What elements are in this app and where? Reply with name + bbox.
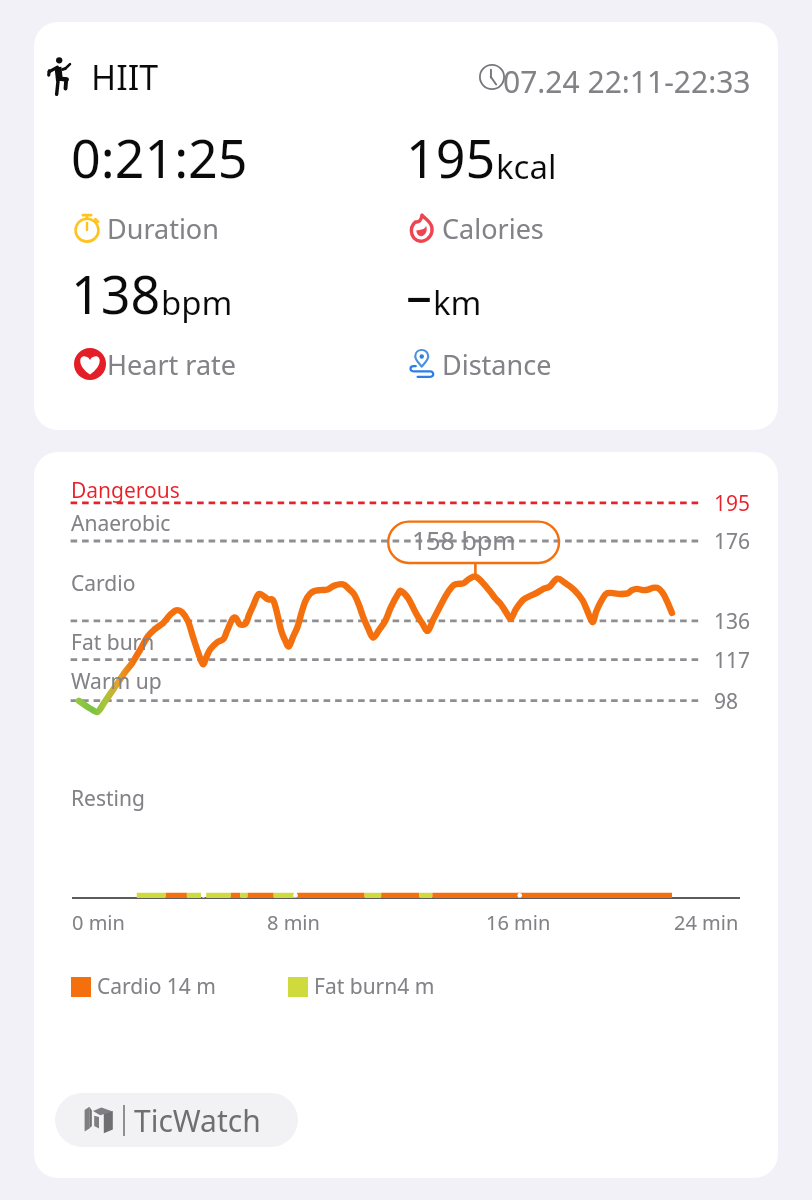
- staticText: Cardio 14 m: [97, 972, 216, 1001]
- staticText: 16 min: [486, 909, 551, 936]
- staticText: km: [433, 280, 482, 325]
- staticText: 24 min: [674, 909, 739, 936]
- staticText: Cardio: [71, 569, 136, 598]
- staticText: 98: [714, 687, 739, 716]
- staticText: Distance: [442, 346, 552, 383]
- staticText: 0:21:25: [71, 122, 248, 193]
- staticText: 117: [714, 646, 751, 675]
- staticText: 138: [71, 258, 161, 329]
- staticText: Fat burn4 m: [314, 972, 435, 1001]
- staticText: Dangerous: [71, 476, 180, 505]
- button[interactable]: TicWatch: [55, 1093, 298, 1147]
- staticText: Anaerobic: [71, 509, 171, 538]
- staticText: Heart rate: [107, 346, 237, 383]
- staticText: bpm: [161, 280, 233, 325]
- staticText: 0 min: [72, 909, 125, 936]
- staticText: 136: [714, 607, 751, 636]
- staticText: –: [406, 258, 433, 329]
- staticText: 195: [714, 489, 751, 518]
- staticText: TicWatch: [134, 1100, 261, 1141]
- staticText: 176: [714, 527, 751, 556]
- staticText: 158 bpm: [412, 523, 516, 557]
- staticText: kcal: [496, 144, 557, 189]
- staticText: 195: [406, 122, 496, 193]
- staticText: Calories: [442, 210, 544, 247]
- staticText: 8 min: [267, 909, 320, 936]
- staticText: Fat burn: [71, 628, 155, 657]
- staticText: Resting: [71, 784, 145, 813]
- staticText: HIIT: [91, 54, 159, 100]
- staticText: Duration: [107, 210, 219, 247]
- staticText: 07.24 22:11-22:33: [503, 61, 751, 102]
- staticText: Warm up: [71, 667, 162, 696]
